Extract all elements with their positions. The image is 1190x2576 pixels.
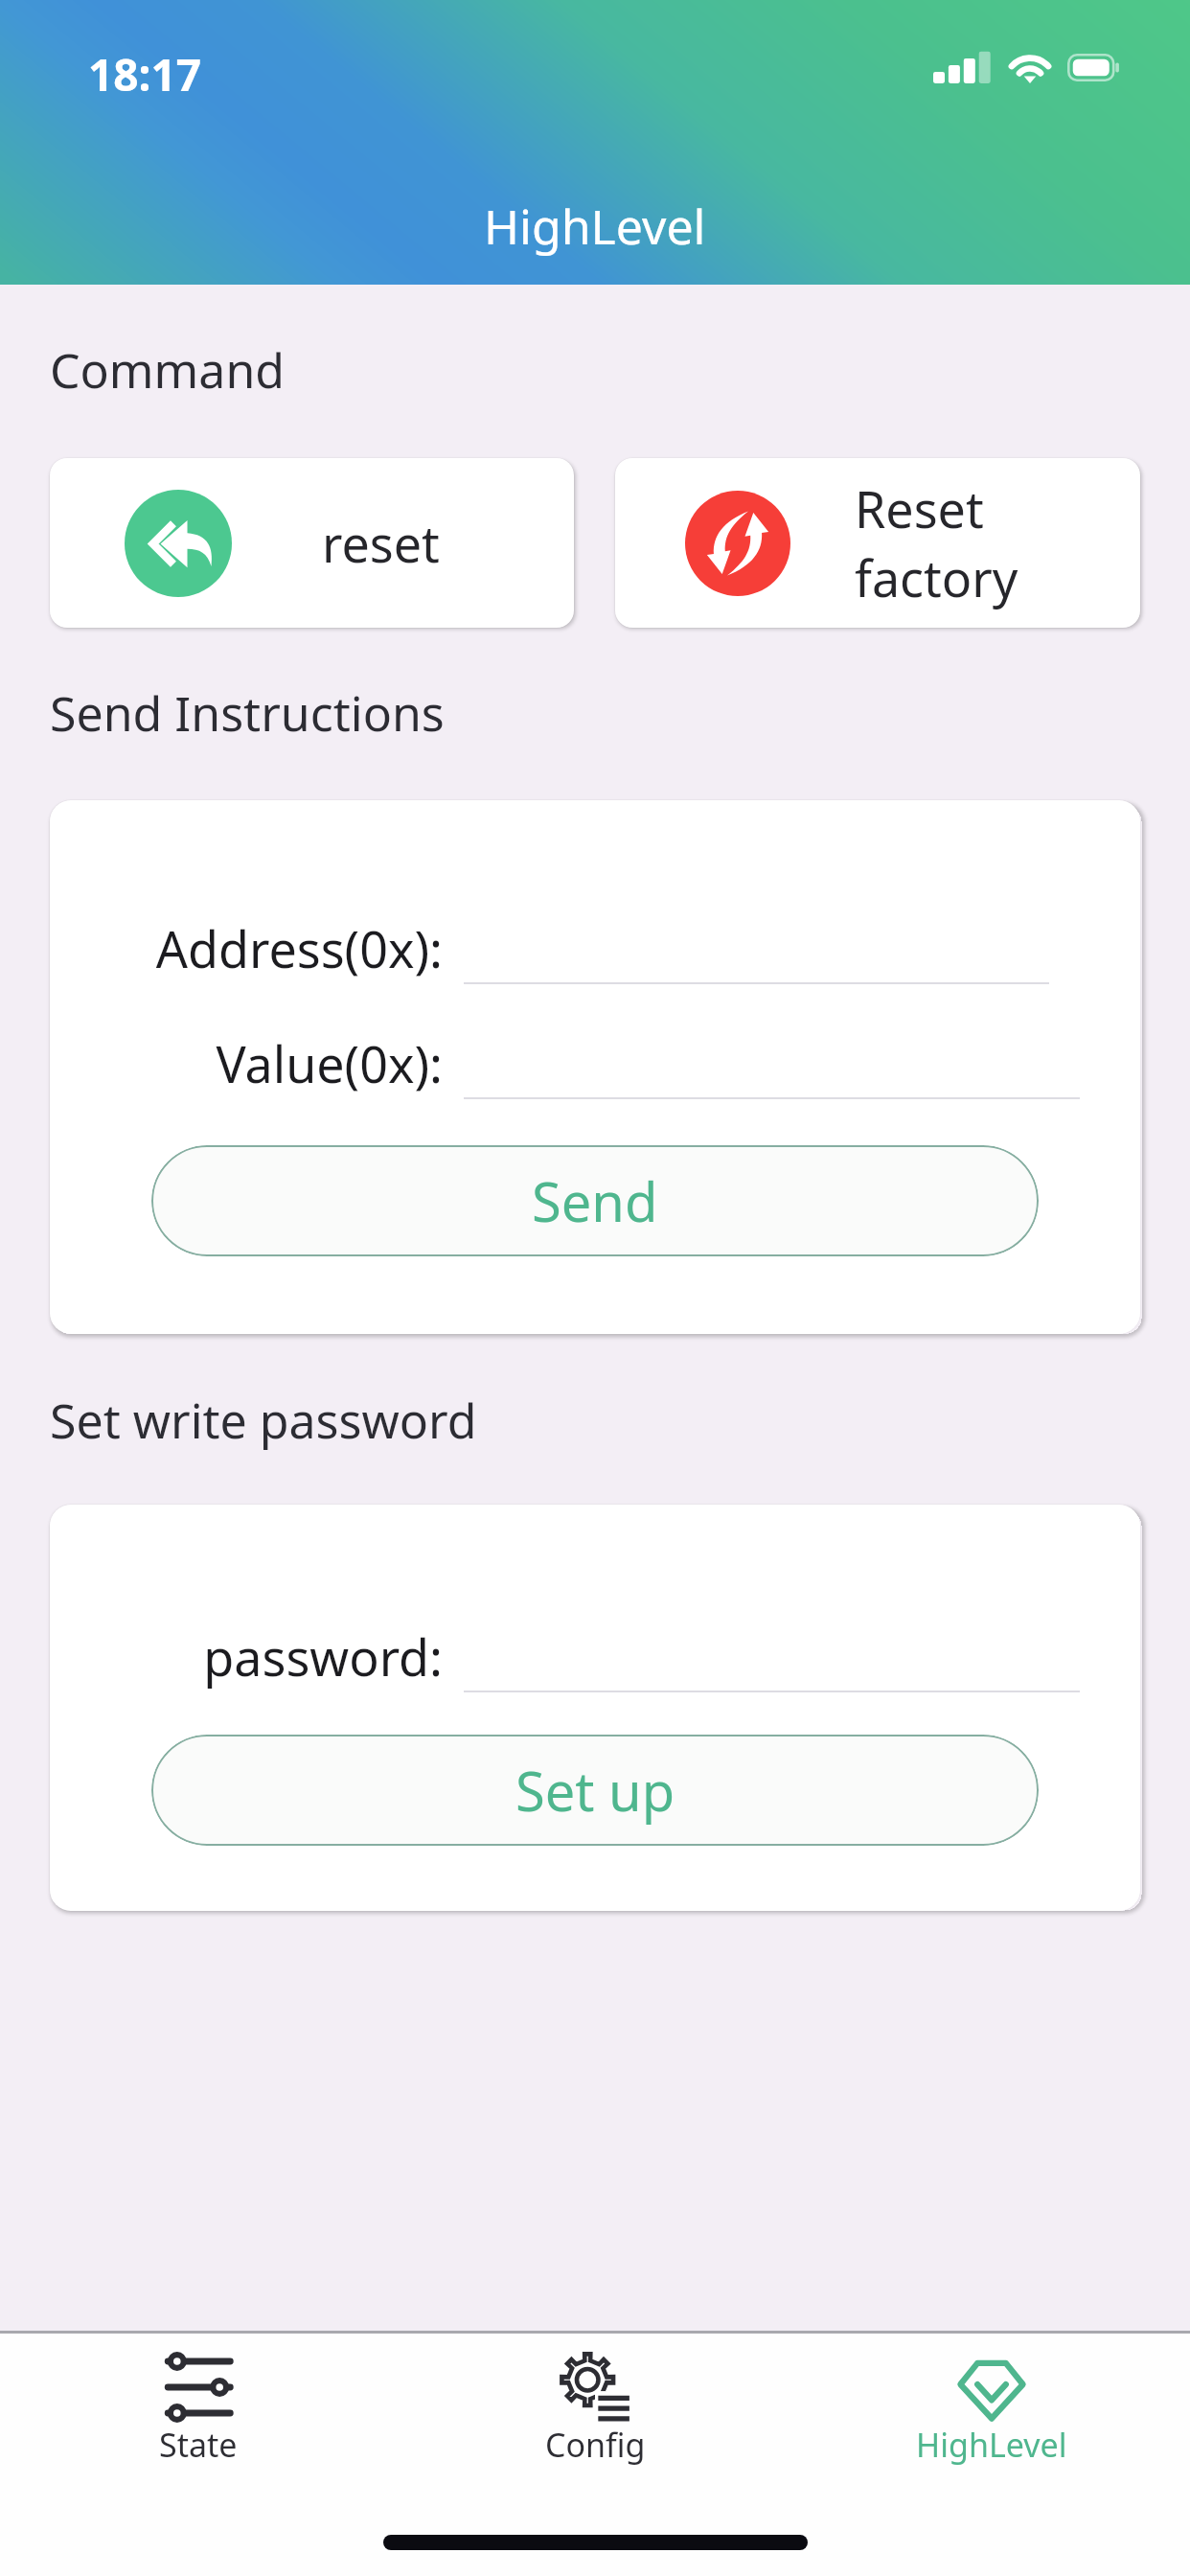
staticText: Set up: [515, 1754, 675, 1827]
staticText: HighLevel: [484, 194, 706, 259]
staticText: 18:17: [88, 44, 202, 104]
staticText: Command: [50, 337, 286, 402]
button[interactable]: State: [69, 2334, 328, 2487]
button[interactable]: reset: [50, 458, 574, 628]
other: State: [163, 2352, 234, 2423]
button[interactable]: HighLevel: [862, 2334, 1121, 2487]
staticText: reset: [322, 509, 440, 577]
staticText: Address(0x):: [50, 914, 443, 982]
staticText: Value(0x):: [50, 1029, 443, 1097]
staticText: Send: [532, 1164, 658, 1237]
staticText: Set write password: [50, 1388, 477, 1453]
button[interactable]: [464, 911, 1049, 984]
button[interactable]: Reset factory: [615, 458, 1140, 628]
button[interactable]: [464, 1620, 1080, 1692]
staticText: Config: [545, 2423, 646, 2467]
staticText: password:: [50, 1622, 443, 1690]
staticText: Send Instructions: [50, 680, 445, 746]
button[interactable]: Send: [151, 1145, 1039, 1256]
button[interactable]: [464, 1026, 1080, 1099]
staticText: Reset factory: [855, 474, 1018, 611]
staticText: State: [159, 2423, 238, 2467]
staticText: HighLevel: [916, 2423, 1067, 2467]
button[interactable]: Config: [466, 2334, 724, 2487]
other: Config: [560, 2352, 630, 2423]
other: HighLevel: [956, 2352, 1027, 2423]
button[interactable]: Set up: [151, 1735, 1039, 1846]
